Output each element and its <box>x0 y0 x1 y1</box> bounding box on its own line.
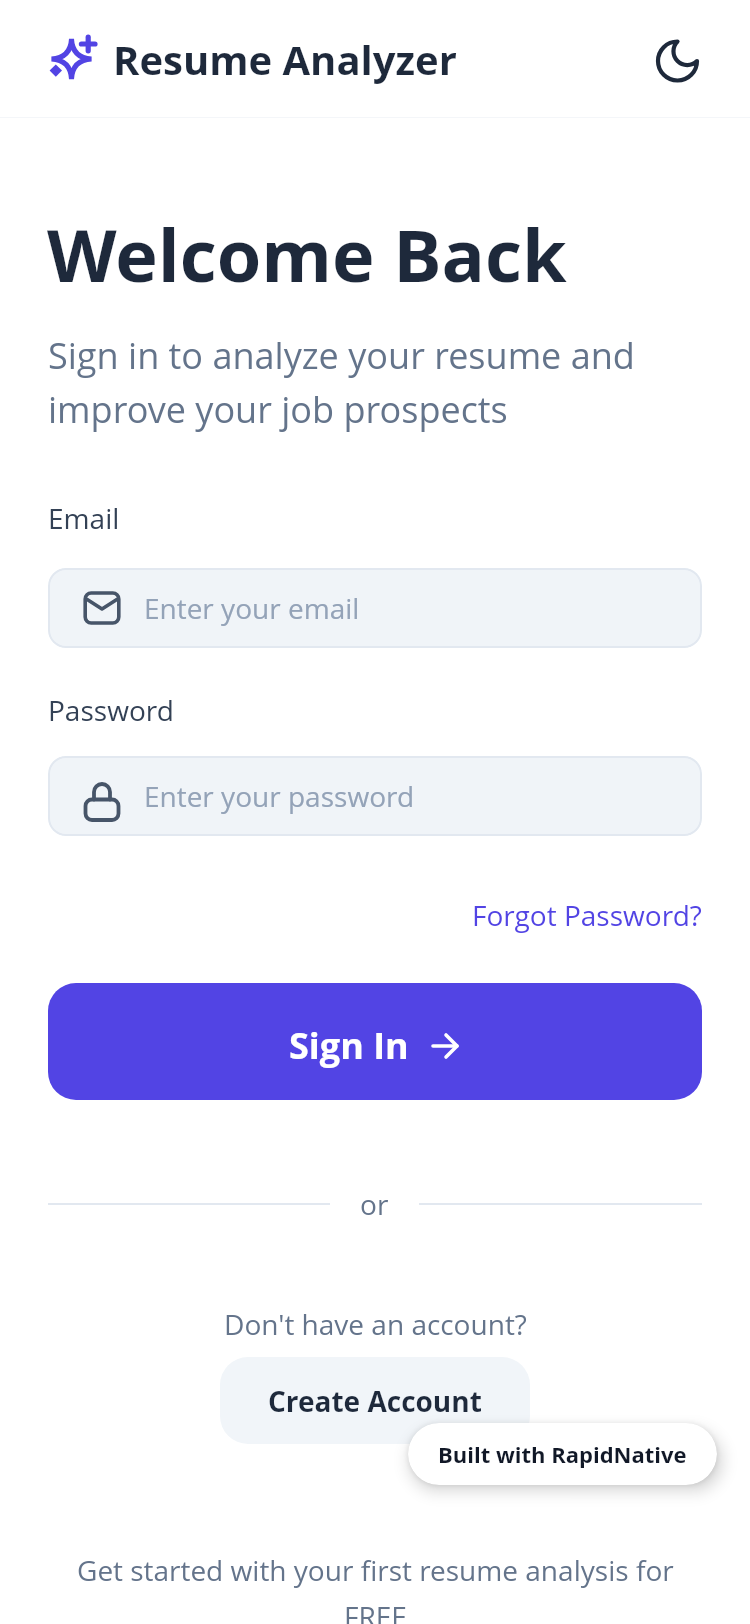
staticText: Get started with your first resume analy… <box>77 1551 674 1589</box>
staticText: Enter your email <box>144 589 360 627</box>
staticText: Don't have an account? <box>224 1305 527 1343</box>
button[interactable]: Forgot Password? <box>472 896 702 934</box>
button[interactable]: Enter your password <box>48 756 702 836</box>
staticText: Resume Analyzer <box>113 32 457 86</box>
button[interactable] <box>652 35 700 83</box>
staticText: Sign in to analyze your resume and <box>48 331 635 380</box>
button[interactable]: Enter your email <box>48 568 702 648</box>
button[interactable]: Create Account <box>220 1357 530 1444</box>
staticText: Password <box>48 691 174 729</box>
button[interactable]: Built with RapidNative <box>408 1423 717 1485</box>
staticText: Built with RapidNative <box>438 1439 687 1469</box>
button[interactable]: Sign In <box>48 983 702 1100</box>
staticText: Email <box>48 499 120 537</box>
staticText: FREE <box>344 1597 407 1624</box>
staticText: Create Account <box>268 1382 482 1420</box>
staticText: Sign In <box>289 1021 409 1070</box>
staticText: Welcome Back <box>47 205 567 303</box>
staticText: improve your job prospects <box>48 385 508 434</box>
staticText: or <box>360 1185 389 1223</box>
staticText: Enter your password <box>144 777 415 815</box>
